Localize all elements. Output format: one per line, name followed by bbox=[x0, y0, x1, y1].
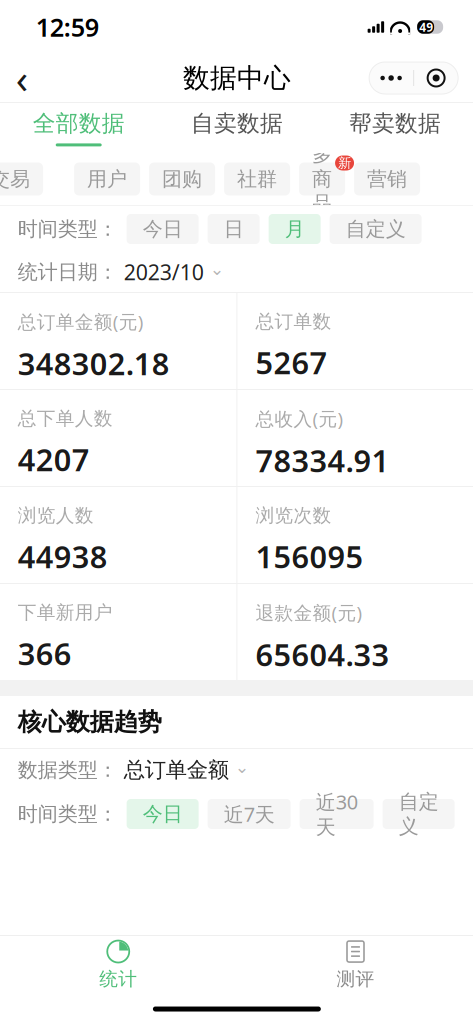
staticText: 总订单金额 bbox=[124, 757, 229, 783]
button[interactable]: 月 bbox=[269, 214, 321, 244]
staticText: 自定义 bbox=[399, 789, 439, 838]
staticText: 今日 bbox=[143, 217, 183, 241]
staticText: 团购 bbox=[162, 167, 202, 191]
button[interactable]: 近7天 bbox=[208, 799, 291, 829]
staticText: ‹ bbox=[16, 51, 28, 104]
staticText: 4207 bbox=[18, 439, 90, 480]
button[interactable]: 今日 bbox=[127, 214, 199, 244]
staticText: 348302.18 bbox=[18, 343, 170, 384]
button[interactable]: 近30天 bbox=[300, 799, 374, 829]
staticText: 自卖数据 bbox=[191, 110, 283, 137]
staticText: ⌄ bbox=[210, 259, 225, 279]
button[interactable]: 多多商品库 bbox=[299, 162, 345, 195]
staticText: 营销 bbox=[367, 167, 407, 191]
staticText: 总收入(元) bbox=[255, 406, 343, 431]
button[interactable]: 自定义 bbox=[383, 799, 455, 829]
staticText: 月 bbox=[285, 217, 305, 241]
staticText: 日 bbox=[224, 217, 244, 241]
staticText: 自定义 bbox=[346, 217, 406, 241]
button[interactable]: 今日 bbox=[127, 799, 199, 829]
staticText: 数据中心 bbox=[183, 62, 291, 94]
button[interactable]: 交易 bbox=[0, 162, 43, 195]
staticText: 时间类型： bbox=[18, 802, 118, 826]
staticText: 用户 bbox=[87, 167, 127, 191]
staticText: 新 bbox=[338, 155, 351, 171]
staticText: 测评 bbox=[336, 967, 374, 990]
button[interactable]: 数据类型： bbox=[0, 749, 473, 791]
button[interactable]: 社群 bbox=[224, 162, 290, 195]
staticText: 近30天 bbox=[316, 788, 358, 839]
staticText: 全部数据 bbox=[33, 110, 125, 137]
staticText: 今日 bbox=[143, 802, 183, 826]
staticText: 44938 bbox=[18, 536, 108, 577]
button[interactable]: 团购 bbox=[149, 162, 215, 195]
staticText: 78334.91 bbox=[255, 440, 389, 481]
staticText: 社群 bbox=[237, 167, 277, 191]
staticText: 近7天 bbox=[224, 801, 275, 827]
button[interactable]: 营销 bbox=[354, 162, 420, 195]
button[interactable]: 测评 bbox=[237, 936, 473, 994]
staticText: 65604.33 bbox=[255, 634, 389, 675]
staticText: 总订单金额(元) bbox=[18, 309, 144, 334]
staticText: 2023/10 bbox=[124, 258, 204, 286]
button[interactable]: 统计日期： bbox=[0, 252, 473, 292]
staticText: 交易 bbox=[0, 167, 30, 191]
button[interactable]: 帮卖数据 bbox=[316, 103, 473, 153]
staticText: 366 bbox=[18, 633, 72, 674]
button[interactable]: 用户 bbox=[74, 162, 140, 195]
staticText: 核心数据趋势 bbox=[18, 707, 162, 737]
staticText: 下单新用户 bbox=[18, 601, 113, 624]
staticText: 退款金额(元) bbox=[255, 600, 362, 625]
staticText: 浏览次数 bbox=[255, 504, 331, 527]
staticText: 多多商品库 bbox=[312, 118, 332, 240]
staticText: 统计日期： bbox=[18, 260, 118, 284]
staticText: 49 bbox=[419, 19, 433, 35]
staticText: 数据类型： bbox=[18, 758, 118, 782]
button[interactable]: 自定义 bbox=[330, 214, 422, 244]
staticText: 浏览人数 bbox=[18, 504, 94, 527]
button[interactable]: 自卖数据 bbox=[158, 103, 316, 153]
staticText: 帮卖数据 bbox=[349, 110, 441, 137]
staticText: 5267 bbox=[255, 342, 327, 383]
staticText: 统计 bbox=[99, 967, 137, 990]
staticText: 时间类型： bbox=[18, 217, 118, 241]
button[interactable]: 日 bbox=[208, 214, 260, 244]
button[interactable]: 统计 bbox=[0, 936, 237, 994]
staticText: 156095 bbox=[255, 536, 363, 577]
button[interactable]: 更多 bbox=[369, 63, 413, 93]
button[interactable]: 小程序胶囊 bbox=[414, 63, 458, 93]
staticText: ⌄ bbox=[235, 757, 250, 777]
staticText: 总订单数 bbox=[255, 310, 331, 333]
staticText: 总下单人数 bbox=[18, 407, 113, 430]
staticText: 12:59 bbox=[36, 10, 99, 44]
button[interactable]: 返回 bbox=[0, 56, 44, 100]
button[interactable]: 全部数据 bbox=[0, 103, 158, 153]
